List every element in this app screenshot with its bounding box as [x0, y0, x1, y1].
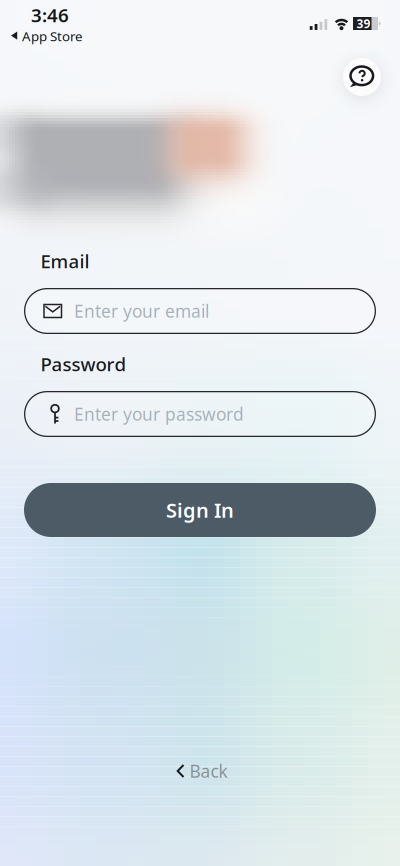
- staticText: 3:46: [31, 3, 69, 27]
- staticText: Sign In: [166, 497, 234, 523]
- button[interactable]: Email: [24, 288, 376, 334]
- button[interactable]: Back to App Store: [11, 27, 83, 45]
- staticText: Enter your password: [74, 402, 244, 425]
- button[interactable]: Help: [343, 58, 381, 96]
- staticText: Back: [189, 759, 227, 782]
- staticText: Password: [40, 352, 126, 376]
- button[interactable]: Password: [24, 391, 376, 437]
- staticText: 39: [356, 15, 370, 31]
- staticText: App Store: [22, 27, 83, 45]
- staticText: Email: [40, 249, 89, 273]
- staticText: Enter your email: [74, 299, 209, 322]
- button[interactable]: Sign In: [24, 483, 376, 537]
- button[interactable]: Back: [176, 759, 227, 782]
